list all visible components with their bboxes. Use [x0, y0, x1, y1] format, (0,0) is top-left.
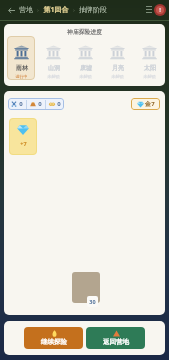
staticText: 太阳 [144, 64, 156, 72]
staticText: +7 [20, 140, 27, 147]
button[interactable]: 第1回合 [43, 5, 69, 15]
staticText: 废墟 [80, 64, 92, 72]
staticText: 山洞 [48, 64, 60, 72]
button[interactable]: 雨林 [7, 36, 35, 80]
button[interactable]: 继续探险 [24, 327, 83, 349]
staticText: 金 [145, 100, 151, 108]
button[interactable]: Alerts [154, 4, 166, 16]
staticText: 0 [38, 100, 42, 108]
staticText: 返回营地 [103, 338, 129, 346]
staticText: 未解锁 [79, 74, 92, 79]
staticText: 神庙探险进度 [4, 28, 165, 35]
button[interactable]: 月亮 [103, 36, 131, 80]
staticText: ! [159, 6, 161, 14]
staticText: 30 [89, 298, 96, 305]
staticText: 月亮 [112, 64, 124, 72]
staticText: 继续探险 [41, 338, 67, 346]
staticText: 未解锁 [143, 74, 156, 79]
button[interactable]: 太阳 [135, 36, 163, 80]
button[interactable]: Menu [143, 4, 154, 15]
button[interactable]: 金 [131, 98, 160, 110]
button[interactable]: 0 [8, 98, 64, 110]
staticText: 7 [151, 100, 155, 108]
button[interactable]: 废墟 [71, 36, 99, 80]
staticText: › [37, 6, 39, 14]
button[interactable]: +7 [9, 118, 37, 155]
staticText: 未解锁 [111, 74, 124, 79]
button[interactable]: 营地 [19, 5, 33, 14]
staticText: › [73, 6, 75, 14]
button[interactable]: 山洞 [39, 36, 67, 80]
staticText: 0 [19, 100, 23, 108]
staticText: 0 [57, 100, 61, 108]
button[interactable] [72, 272, 100, 303]
button[interactable]: 返回营地 [86, 327, 145, 349]
button[interactable]: Back [5, 4, 17, 16]
button[interactable]: 抽牌阶段 [79, 5, 107, 14]
staticText: 雨林 [16, 64, 28, 72]
staticText: 进行中 [15, 74, 28, 79]
staticText: 未解锁 [47, 74, 60, 79]
